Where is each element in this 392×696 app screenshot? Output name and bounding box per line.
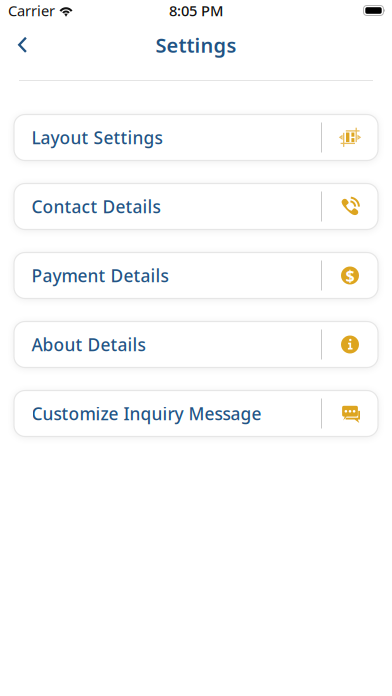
staticText: Customize Inquiry Message <box>31 402 261 425</box>
staticText: Layout Settings <box>31 126 162 149</box>
staticText: 8:05 PM <box>169 1 223 20</box>
staticText: Carrier <box>8 1 55 20</box>
button[interactable]: Payment Details <box>14 252 378 298</box>
button[interactable]: Contact Details <box>14 183 378 229</box>
button[interactable]: Layout Settings <box>14 114 378 160</box>
staticText: Payment Details <box>31 264 168 287</box>
staticText: Settings <box>155 32 236 58</box>
button[interactable]: Back <box>0 25 41 64</box>
button[interactable]: About Details <box>14 321 378 367</box>
staticText: About Details <box>31 333 145 356</box>
button[interactable]: Customize Inquiry Message <box>14 390 378 436</box>
staticText: $ <box>345 265 354 286</box>
staticText: Contact Details <box>31 195 160 218</box>
